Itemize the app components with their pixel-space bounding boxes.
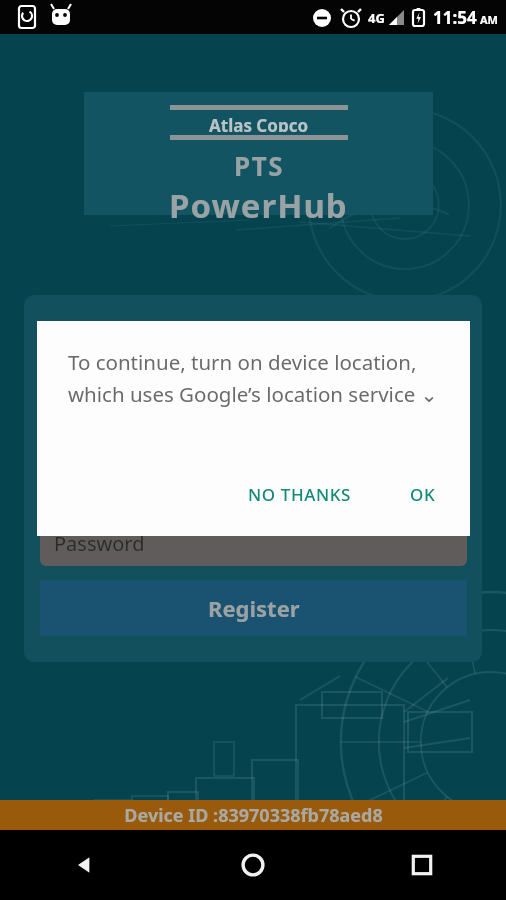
staticText: Password [54, 530, 145, 557]
staticText: PowerHub [169, 183, 348, 228]
button[interactable]: OK [396, 471, 450, 518]
staticText: 11:54 [433, 6, 477, 29]
button[interactable]: Home [168, 830, 337, 900]
staticText: AM [480, 12, 498, 27]
button[interactable]: Register [40, 580, 467, 636]
button[interactable]: Back [0, 830, 168, 900]
staticText: OK [410, 483, 436, 506]
staticText: 4G [368, 9, 385, 27]
button[interactable]: Recent apps [337, 830, 506, 900]
staticText: NO THANKS [248, 483, 352, 506]
staticText: Register [208, 593, 300, 623]
staticText: To continue, turn on device location, wh… [68, 348, 448, 408]
button[interactable]: Password [40, 520, 467, 566]
staticText: Device ID :83970338fb78aed8 [124, 803, 383, 828]
button[interactable]: NO THANKS [236, 471, 364, 518]
staticText: Atlas Copco [209, 114, 309, 132]
staticText: PTS [234, 148, 284, 183]
